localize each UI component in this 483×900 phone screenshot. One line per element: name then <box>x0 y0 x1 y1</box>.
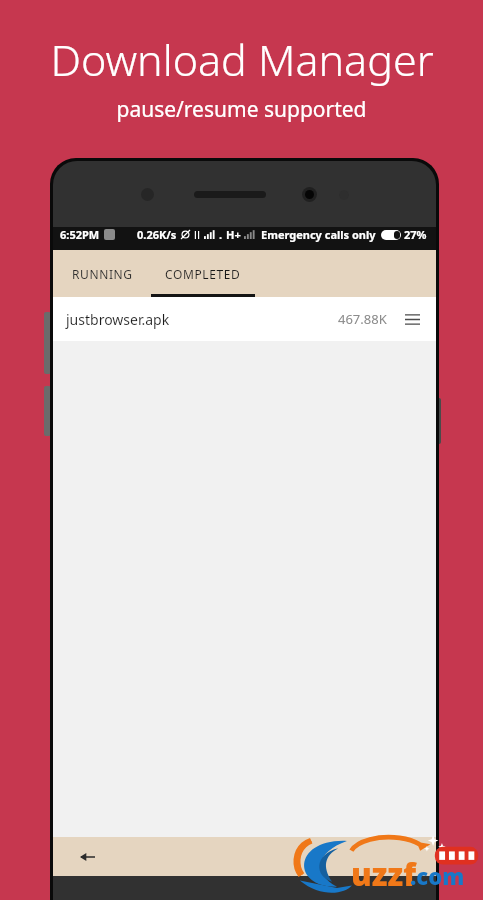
staticText: pause/resume supported <box>116 95 367 124</box>
button[interactable]: justbrowser.apk <box>53 297 436 341</box>
staticText: 27% <box>404 227 427 242</box>
button[interactable]: More options <box>401 308 423 330</box>
staticText: H+ <box>226 227 241 242</box>
staticText: 0.26K/s <box>137 227 177 242</box>
staticText: Download Manager <box>50 30 434 89</box>
staticText: COMPLETED <box>165 266 241 282</box>
button[interactable]: Back <box>73 843 101 871</box>
staticText: RUNNING <box>72 266 133 282</box>
staticText: 467.88K <box>338 310 387 328</box>
button[interactable]: RUNNING <box>53 250 151 297</box>
staticText: uzzf <box>351 853 417 895</box>
button[interactable]: COMPLETED <box>151 250 255 297</box>
staticText: .com <box>410 861 465 891</box>
staticText: . <box>219 227 223 242</box>
staticText: justbrowser.apk <box>66 310 170 329</box>
staticText: 6:52PM <box>60 227 100 242</box>
staticText: Emergency calls only <box>261 227 376 242</box>
